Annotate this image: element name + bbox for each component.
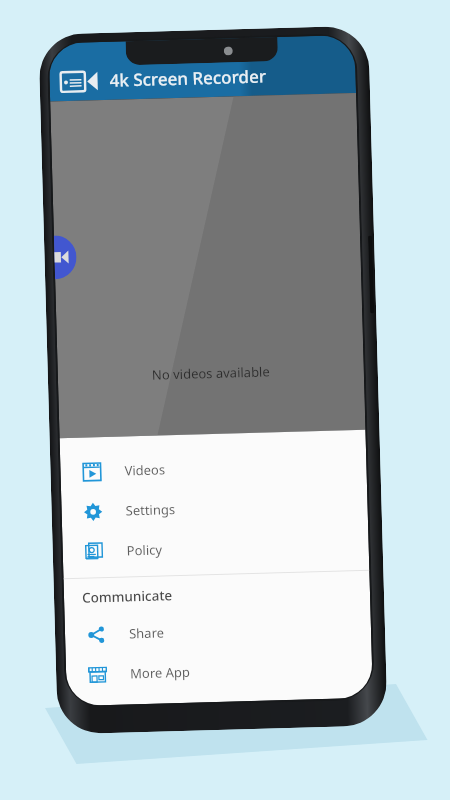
staticText: Policy <box>126 540 163 559</box>
staticText: Videos <box>124 460 166 479</box>
button[interactable]: Settings <box>61 484 368 532</box>
button[interactable]: Share <box>64 607 371 655</box>
staticText: Settings <box>125 500 176 519</box>
staticText: Communicate <box>82 586 173 607</box>
button[interactable]: Start recording <box>54 235 77 279</box>
staticText: 4k Screen Recorder <box>109 64 267 92</box>
staticText: More App <box>130 663 190 682</box>
staticText: Share <box>129 623 164 642</box>
button[interactable]: More App <box>66 647 373 695</box>
button[interactable]: Policy <box>62 524 369 572</box>
button[interactable]: Videos <box>60 444 367 492</box>
staticText: No videos available <box>152 362 270 384</box>
